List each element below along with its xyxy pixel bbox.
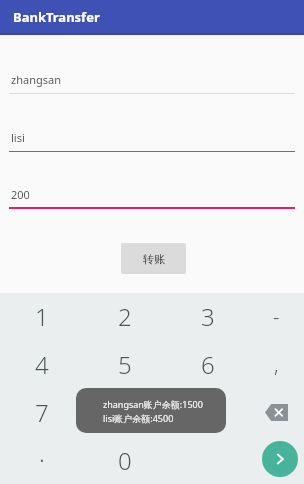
staticText: 4 <box>35 348 49 381</box>
button[interactable]: 1 <box>0 293 83 340</box>
staticText: 5 <box>118 348 132 381</box>
button[interactable]: . <box>0 436 83 484</box>
staticText: 8 <box>118 396 132 429</box>
button[interactable]: 6 <box>166 340 249 388</box>
button[interactable]: 0 <box>83 436 166 484</box>
button[interactable]: , <box>249 340 304 388</box>
staticText: 1 <box>35 300 49 333</box>
button[interactable]: 转账 <box>121 243 186 274</box>
button[interactable]: zhangsan <box>0 70 304 94</box>
staticText: 6 <box>201 348 215 381</box>
staticText: 0 <box>118 444 132 477</box>
staticText: 9 <box>201 396 215 429</box>
staticText: - <box>273 303 280 330</box>
button[interactable]: 2 <box>83 293 166 340</box>
staticText: lisi <box>11 130 25 145</box>
button[interactable]: Backspace <box>249 388 304 436</box>
staticText: 2 <box>118 300 132 333</box>
staticText: 转账 <box>143 252 165 266</box>
staticText: , <box>274 351 279 378</box>
staticText: zhangsan <box>11 72 61 87</box>
button[interactable]: 3 <box>166 293 249 340</box>
staticText: . <box>39 436 45 469</box>
button[interactable]: Enter <box>262 441 298 477</box>
staticText: lisi账户余额:4500 <box>103 412 174 424</box>
button[interactable]: 7 <box>0 388 83 436</box>
staticText: BankTransfer <box>13 8 100 26</box>
button[interactable]: 4 <box>0 340 83 388</box>
button[interactable]: 200 <box>0 185 304 209</box>
button[interactable]: - <box>249 293 304 340</box>
button[interactable]: 5 <box>83 340 166 388</box>
staticText: 3 <box>201 300 215 333</box>
other: Backspace <box>265 404 288 421</box>
button[interactable]: 9 <box>166 388 249 436</box>
staticText: zhangsan账户余额:1500 <box>103 398 203 410</box>
button[interactable] <box>249 436 304 484</box>
staticText: 200 <box>11 187 30 202</box>
button[interactable]: 8 <box>83 388 166 436</box>
staticText: 7 <box>35 396 49 429</box>
button[interactable]: lisi <box>0 128 304 152</box>
